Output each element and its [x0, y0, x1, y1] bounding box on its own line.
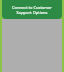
- staticText: Connect to Customer Support Options: [12, 5, 52, 15]
